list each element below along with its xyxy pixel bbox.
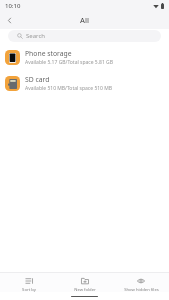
button[interactable]: New folder	[57, 278, 113, 292]
staticText: Show hidden files	[124, 287, 159, 292]
button[interactable]: Back	[0, 11, 18, 29]
button[interactable]: Phone storage	[0, 44, 169, 70]
staticText: Available 510 MB/Total space 510 MB	[25, 85, 113, 92]
staticText: SD card	[25, 75, 50, 84]
button[interactable]: Show hidden files	[113, 278, 169, 292]
button[interactable]: Sort by	[0, 278, 57, 292]
staticText: Search	[26, 32, 45, 40]
staticText: 10:10	[5, 2, 21, 10]
staticText: All	[80, 15, 89, 25]
staticText: Available 5.17 GB/Total space 5.81 GB	[25, 59, 113, 66]
button[interactable]: Search	[8, 30, 161, 42]
staticText: Sort by	[22, 287, 36, 292]
staticText: New folder	[74, 287, 96, 292]
staticText: Phone storage	[25, 49, 72, 58]
button[interactable]: SD card	[0, 70, 169, 96]
